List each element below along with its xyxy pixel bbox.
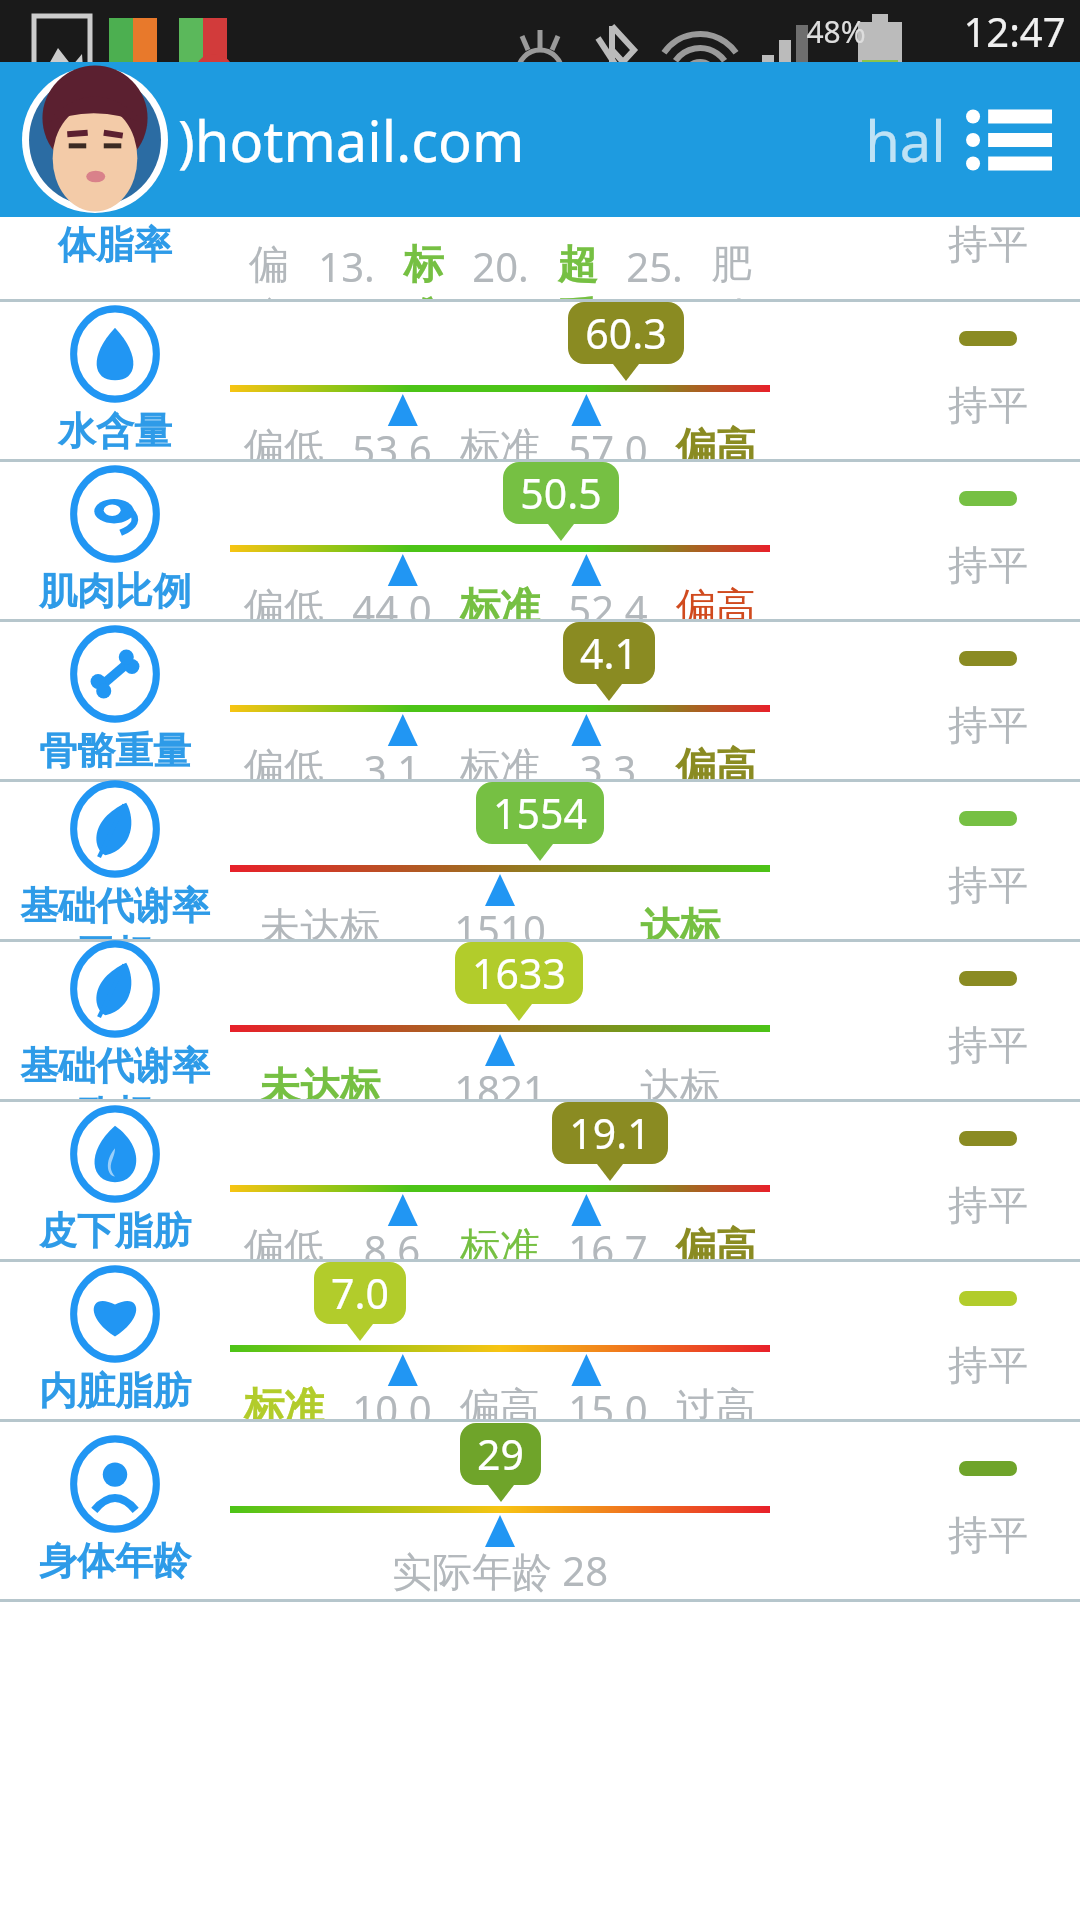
staticText: 肌肉比例 xyxy=(39,567,191,615)
staticText: 持平 xyxy=(948,700,1028,750)
staticText: 超重 xyxy=(539,239,616,299)
staticText: 8.6 xyxy=(338,1222,446,1259)
button[interactable]: 体脂率 xyxy=(0,217,1080,302)
staticText: 48% xyxy=(806,11,866,52)
staticText: 达标 xyxy=(590,902,770,939)
staticText: 12:47 xyxy=(963,4,1066,58)
staticText: hal xyxy=(865,102,946,178)
staticText: 偏高 xyxy=(446,1382,554,1419)
staticText: 持平 xyxy=(948,1340,1028,1390)
staticText: 偏高 xyxy=(662,1222,770,1259)
staticText: 标准 xyxy=(446,1222,554,1259)
staticText: 实际年龄 28 xyxy=(230,1543,770,1598)
staticText: 未达标 xyxy=(230,902,410,939)
staticText: 44.0 xyxy=(338,582,446,619)
staticText: 29 xyxy=(477,1426,524,1482)
button[interactable]: 身体年龄 xyxy=(0,1422,1080,1602)
staticText: （欧标） xyxy=(39,1090,191,1099)
staticText: 偏低 xyxy=(230,582,338,619)
staticText: 内脏脂肪 xyxy=(39,1367,191,1415)
staticText: 持平 xyxy=(948,1510,1028,1560)
staticText: 1510 xyxy=(410,902,590,939)
staticText: 标准 xyxy=(446,422,554,459)
button[interactable]: 皮下脂肪 xyxy=(0,1102,1080,1262)
staticText: 15.0 xyxy=(554,1382,662,1419)
button[interactable] xyxy=(22,67,168,213)
staticText: （亚标） xyxy=(39,930,191,939)
staticText: 1821 xyxy=(410,1062,590,1099)
staticText: 7.0 xyxy=(331,1265,389,1321)
staticText: 持平 xyxy=(948,1020,1028,1070)
button[interactable]: 骨骼重量 xyxy=(0,622,1080,782)
staticText: 偏高 xyxy=(662,742,770,779)
staticText: 肥胖 xyxy=(693,239,770,299)
staticText: 持平 xyxy=(948,380,1028,430)
staticText: 持平 xyxy=(948,1180,1028,1230)
staticText: 1633 xyxy=(472,945,566,1001)
staticText: 偏低 xyxy=(230,1222,338,1259)
staticText: 3.1 xyxy=(338,742,446,779)
staticText: 19.1 xyxy=(569,1105,651,1161)
staticText: 偏低 xyxy=(230,422,338,459)
staticText: 60.3 xyxy=(585,305,667,361)
staticText: 16.7 xyxy=(554,1222,662,1259)
staticText: 25.0 xyxy=(616,239,693,299)
staticText: 1554 xyxy=(493,785,587,841)
staticText: 偏高 xyxy=(662,582,770,619)
staticText: 水含量 xyxy=(58,407,172,455)
staticText: 57.0 xyxy=(554,422,662,459)
staticText: 基础代谢率 xyxy=(20,882,210,930)
button[interactable]: 基础代谢率 xyxy=(0,782,1080,942)
staticText: 4.1 xyxy=(580,625,638,681)
staticText: 过高 xyxy=(662,1382,770,1419)
staticText: 达标 xyxy=(590,1062,770,1099)
button[interactable]: 内脏脂肪 xyxy=(0,1262,1080,1422)
button[interactable]: Menu xyxy=(962,92,1058,188)
staticText: 基础代谢率 xyxy=(20,1042,210,1090)
staticText: 标准 xyxy=(230,1382,338,1419)
staticText: 标准 xyxy=(446,582,554,619)
staticText: 持平 xyxy=(948,860,1028,910)
staticText: 皮下脂肪 xyxy=(39,1207,191,1255)
staticText: 13.0 xyxy=(308,239,385,299)
staticText: 20.0 xyxy=(462,239,539,299)
staticText: 体脂率 xyxy=(58,221,172,269)
staticText: 标准 xyxy=(385,239,462,299)
button[interactable]: 基础代谢率 xyxy=(0,942,1080,1102)
staticText: )hotmail.com xyxy=(178,102,525,178)
staticText: 身体年龄 xyxy=(39,1537,191,1585)
button[interactable]: 肌肉比例 xyxy=(0,462,1080,622)
staticText: 标准 xyxy=(446,742,554,779)
staticText: 3.3 xyxy=(554,742,662,779)
staticText: 10.0 xyxy=(338,1382,446,1419)
staticText: 偏高 xyxy=(662,422,770,459)
staticText: 50.5 xyxy=(520,465,602,521)
staticText: 52.4 xyxy=(554,582,662,619)
staticText: 骨骼重量 xyxy=(39,727,191,775)
staticText: 偏低 xyxy=(230,742,338,779)
staticText: 未达标 xyxy=(230,1062,410,1099)
staticText: 持平 xyxy=(948,540,1028,590)
staticText: 偏瘦 xyxy=(230,239,308,299)
staticText: 53.6 xyxy=(338,422,446,459)
staticText: 持平 xyxy=(948,219,1028,269)
button[interactable]: 水含量 xyxy=(0,302,1080,462)
